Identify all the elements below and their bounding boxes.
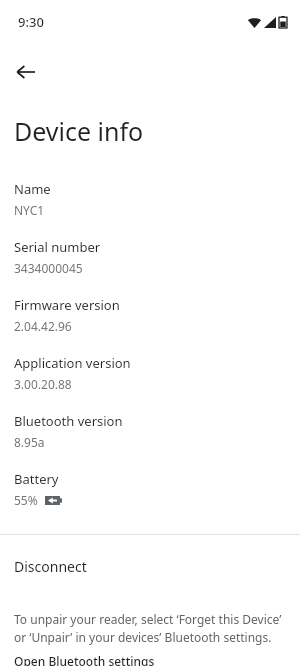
- staticText: 3434000045: [14, 260, 83, 276]
- staticText: Open Bluetooth settings: [14, 653, 155, 666]
- staticText: 9:30: [18, 13, 44, 31]
- staticText: Serial number: [14, 238, 101, 256]
- staticText: 3.00.20.88: [14, 376, 72, 392]
- button[interactable]: Back: [6, 52, 46, 92]
- staticText: Application version: [14, 354, 131, 372]
- staticText: Device info: [14, 114, 144, 148]
- staticText: Disconnect: [14, 557, 87, 576]
- staticText: 55%: [14, 492, 38, 508]
- button[interactable]: Open Bluetooth settings: [0, 652, 169, 667]
- staticText: Name: [14, 180, 51, 198]
- button[interactable]: Disconnect: [0, 555, 300, 578]
- staticText: NYC1: [14, 202, 45, 218]
- staticText: Firmware version: [14, 296, 120, 314]
- staticText: 2.04.42.96: [14, 318, 72, 334]
- staticText: Bluetooth version: [14, 412, 123, 430]
- staticText: 8.95a: [14, 434, 45, 450]
- staticText: To unpair your reader, select ‘Forget th…: [14, 611, 290, 646]
- staticText: Battery: [14, 470, 59, 488]
